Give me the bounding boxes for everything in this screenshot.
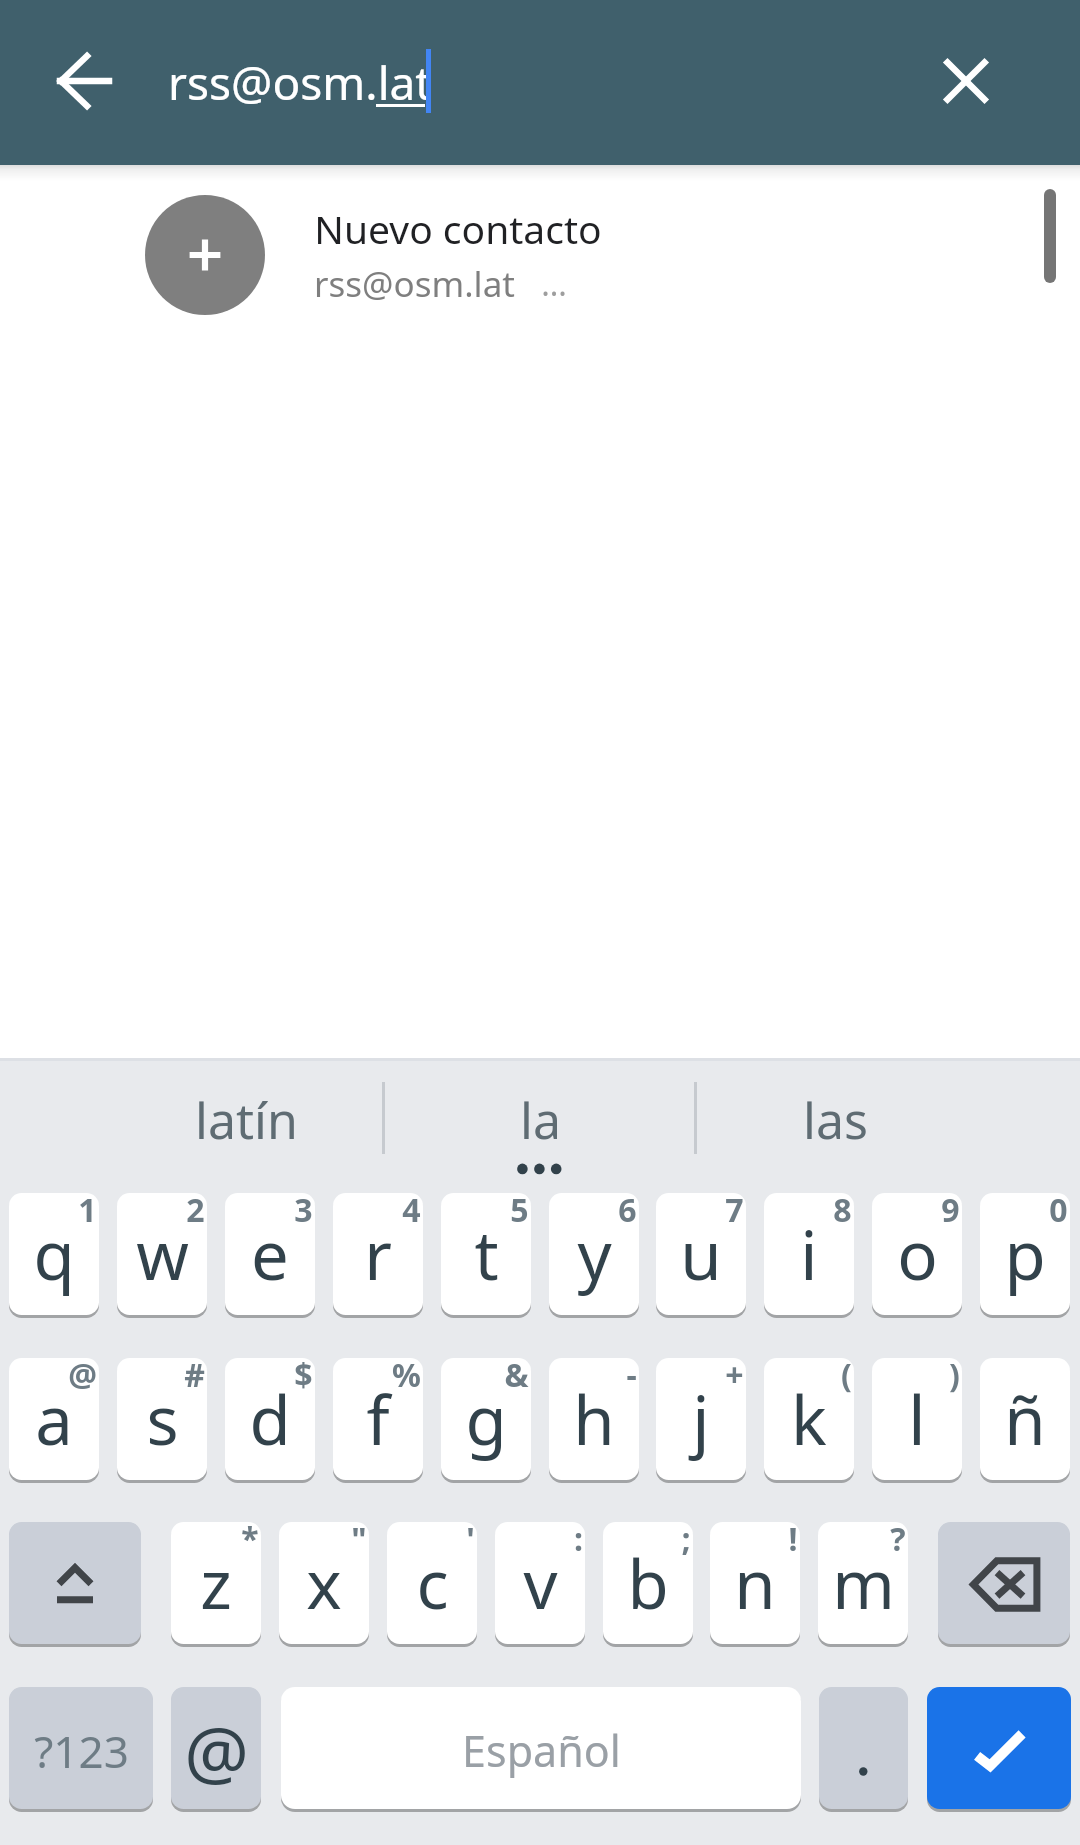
staticText: l <box>908 1373 926 1464</box>
staticText: 3 <box>294 1193 313 1232</box>
staticText: ... <box>541 262 567 306</box>
button[interactable]: c <box>387 1522 477 1644</box>
staticText: " <box>351 1522 367 1561</box>
staticText: # <box>184 1358 205 1397</box>
staticText: m <box>832 1537 895 1628</box>
button[interactable]: Enter <box>927 1687 1071 1809</box>
button[interactable]: y <box>549 1193 639 1315</box>
staticText: w <box>136 1208 189 1299</box>
staticText: @ <box>68 1358 97 1397</box>
button[interactable]: g <box>441 1358 531 1480</box>
staticText: 1 <box>78 1193 97 1232</box>
staticText: & <box>504 1358 529 1397</box>
button[interactable]: k <box>764 1358 854 1480</box>
button[interactable]: Español <box>281 1687 801 1809</box>
button[interactable]: la <box>394 1065 686 1175</box>
button[interactable]: r <box>333 1193 423 1315</box>
staticText: latín <box>195 1086 298 1154</box>
staticText: o <box>897 1208 938 1299</box>
staticText: u <box>680 1208 722 1299</box>
staticText: e <box>251 1208 289 1299</box>
button[interactable]: Back <box>36 33 132 129</box>
staticText: s <box>146 1373 179 1464</box>
staticText: 7 <box>725 1193 744 1232</box>
staticText: z <box>200 1537 232 1628</box>
staticText: + <box>725 1358 744 1397</box>
staticText: i <box>800 1208 818 1299</box>
button[interactable]: Clear text <box>918 33 1014 129</box>
button[interactable]: e <box>225 1193 315 1315</box>
button[interactable]: j <box>656 1358 746 1480</box>
staticText: 5 <box>510 1193 529 1232</box>
staticText: n <box>734 1537 776 1628</box>
staticText: k <box>791 1373 827 1464</box>
button[interactable]: a <box>9 1358 99 1480</box>
staticText: g <box>465 1373 507 1464</box>
staticText: 0 <box>1049 1193 1068 1232</box>
button[interactable]: b <box>603 1522 693 1644</box>
button[interactable]: h <box>549 1358 639 1480</box>
button[interactable]: s <box>117 1358 207 1480</box>
staticText: ? <box>890 1522 906 1561</box>
button[interactable]: d <box>225 1358 315 1480</box>
button[interactable]: Period <box>819 1687 908 1809</box>
staticText: c <box>416 1537 449 1628</box>
staticText: las <box>803 1086 868 1154</box>
button[interactable]: n <box>710 1522 800 1644</box>
staticText: ' <box>466 1522 475 1561</box>
staticText: ( <box>841 1358 852 1397</box>
staticText: 6 <box>618 1193 637 1232</box>
button[interactable]: p <box>980 1193 1070 1315</box>
staticText: 4 <box>402 1193 421 1232</box>
staticText: % <box>392 1358 421 1397</box>
button[interactable]: rss@osm.lat <box>150 24 900 140</box>
button[interactable]: ñ <box>980 1358 1070 1480</box>
staticText: ñ <box>1004 1373 1046 1464</box>
button[interactable]: Backspace <box>938 1522 1070 1644</box>
staticText: j <box>692 1373 710 1464</box>
staticText: ?123 <box>34 1721 129 1781</box>
button[interactable]: m <box>818 1522 908 1644</box>
staticText: @ <box>184 1702 249 1800</box>
button[interactable]: o <box>872 1193 962 1315</box>
staticText: v <box>523 1537 558 1628</box>
staticText: q <box>33 1208 75 1299</box>
staticText: 9 <box>941 1193 960 1232</box>
staticText: $ <box>294 1358 313 1397</box>
button[interactable]: w <box>117 1193 207 1315</box>
staticText: rss@osm.lat <box>314 260 515 308</box>
staticText: f <box>366 1373 390 1464</box>
staticText: t <box>474 1208 499 1299</box>
staticText: * <box>241 1522 259 1561</box>
staticText: a <box>35 1373 73 1464</box>
button[interactable]: z <box>171 1522 261 1644</box>
button[interactable]: u <box>656 1193 746 1315</box>
button[interactable]: ?123 <box>9 1687 153 1809</box>
button[interactable]: Shift <box>9 1522 141 1644</box>
button[interactable]: i <box>764 1193 854 1315</box>
button[interactable]: f <box>333 1358 423 1480</box>
staticText: y <box>577 1208 612 1299</box>
staticText: ) <box>949 1358 960 1397</box>
staticText: : <box>574 1522 583 1561</box>
button[interactable]: At sign <box>171 1687 261 1809</box>
button[interactable]: v <box>495 1522 585 1644</box>
staticText: 8 <box>833 1193 852 1232</box>
staticText: r <box>364 1208 392 1299</box>
button[interactable]: t <box>441 1193 531 1315</box>
staticText: b <box>627 1537 669 1628</box>
button[interactable]: x <box>279 1522 369 1644</box>
button[interactable]: q <box>9 1193 99 1315</box>
staticText: x <box>306 1537 342 1628</box>
staticText: h <box>573 1373 615 1464</box>
staticText: ; <box>681 1522 691 1561</box>
staticText: Español <box>462 1721 621 1780</box>
staticText: 2 <box>186 1193 205 1232</box>
staticText: - <box>626 1358 637 1397</box>
button[interactable]: latín <box>100 1065 392 1175</box>
staticText: rss@osm.lat <box>168 51 432 114</box>
button[interactable]: l <box>872 1358 962 1480</box>
button[interactable]: Nuevo contacto <box>0 175 1080 335</box>
staticText: la <box>520 1086 561 1154</box>
button[interactable]: las <box>689 1065 981 1175</box>
